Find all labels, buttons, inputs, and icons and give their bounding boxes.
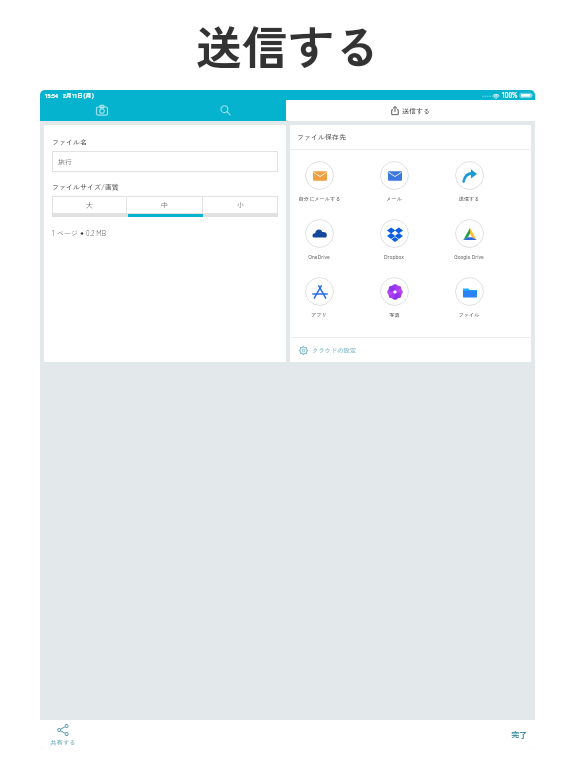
staticText: クラウドの設定 (312, 346, 357, 355)
staticText: 送信する (458, 195, 480, 203)
staticText: メール (386, 195, 402, 203)
button[interactable]: 送信する (432, 161, 506, 203)
button[interactable]: メール (357, 161, 431, 203)
staticText: 2月11日(月) (63, 91, 95, 100)
staticText: 小 (237, 200, 244, 210)
staticText: ファイル保存先 (297, 132, 346, 142)
staticText: 旅行 (58, 157, 72, 167)
button[interactable]: Camera (40, 100, 164, 121)
button[interactable]: OneDrive (282, 219, 356, 261)
button[interactable]: Dropbox (357, 219, 431, 261)
button[interactable]: 小 (203, 196, 278, 214)
button[interactable]: 旅行 (52, 151, 278, 172)
button[interactable]: クラウドの設定 (299, 338, 531, 362)
staticText: 15:54 (45, 91, 58, 100)
staticText: Google Drive (454, 253, 484, 261)
staticText: ファイル (458, 311, 480, 319)
staticText: Dropbox (384, 253, 404, 261)
staticText: ファイルサイズ/画質 (52, 182, 119, 192)
button[interactable]: Google Drive (432, 219, 506, 261)
button[interactable]: 中 (127, 196, 202, 214)
staticText: 100% (502, 90, 518, 100)
staticText: 0.2 MB (86, 228, 107, 238)
staticText: 共有する (50, 738, 76, 747)
staticText: ファイル名 (52, 137, 87, 147)
button[interactable]: 送信する (286, 100, 535, 121)
staticText: 1 ページ (52, 228, 78, 238)
button[interactable]: 自分にメールする (282, 161, 356, 203)
staticText: 送信する (196, 12, 380, 68)
button[interactable]: ファイル (432, 277, 506, 319)
staticText: 自分にメールする (298, 195, 341, 203)
button[interactable]: 写真 (357, 277, 431, 319)
staticText: OneDrive (308, 253, 330, 261)
staticText: 中 (161, 200, 168, 210)
button[interactable]: 完了 (511, 729, 527, 741)
button[interactable]: Search (164, 100, 286, 121)
button[interactable]: 大 (52, 196, 126, 214)
staticText: 送信する (402, 106, 430, 116)
staticText: 大 (86, 200, 93, 210)
staticText: 完了 (511, 729, 527, 741)
button[interactable]: アプリ (282, 277, 356, 319)
button[interactable]: 共有する (50, 724, 76, 747)
staticText: アプリ (311, 311, 327, 319)
staticText: 写真 (389, 311, 400, 319)
